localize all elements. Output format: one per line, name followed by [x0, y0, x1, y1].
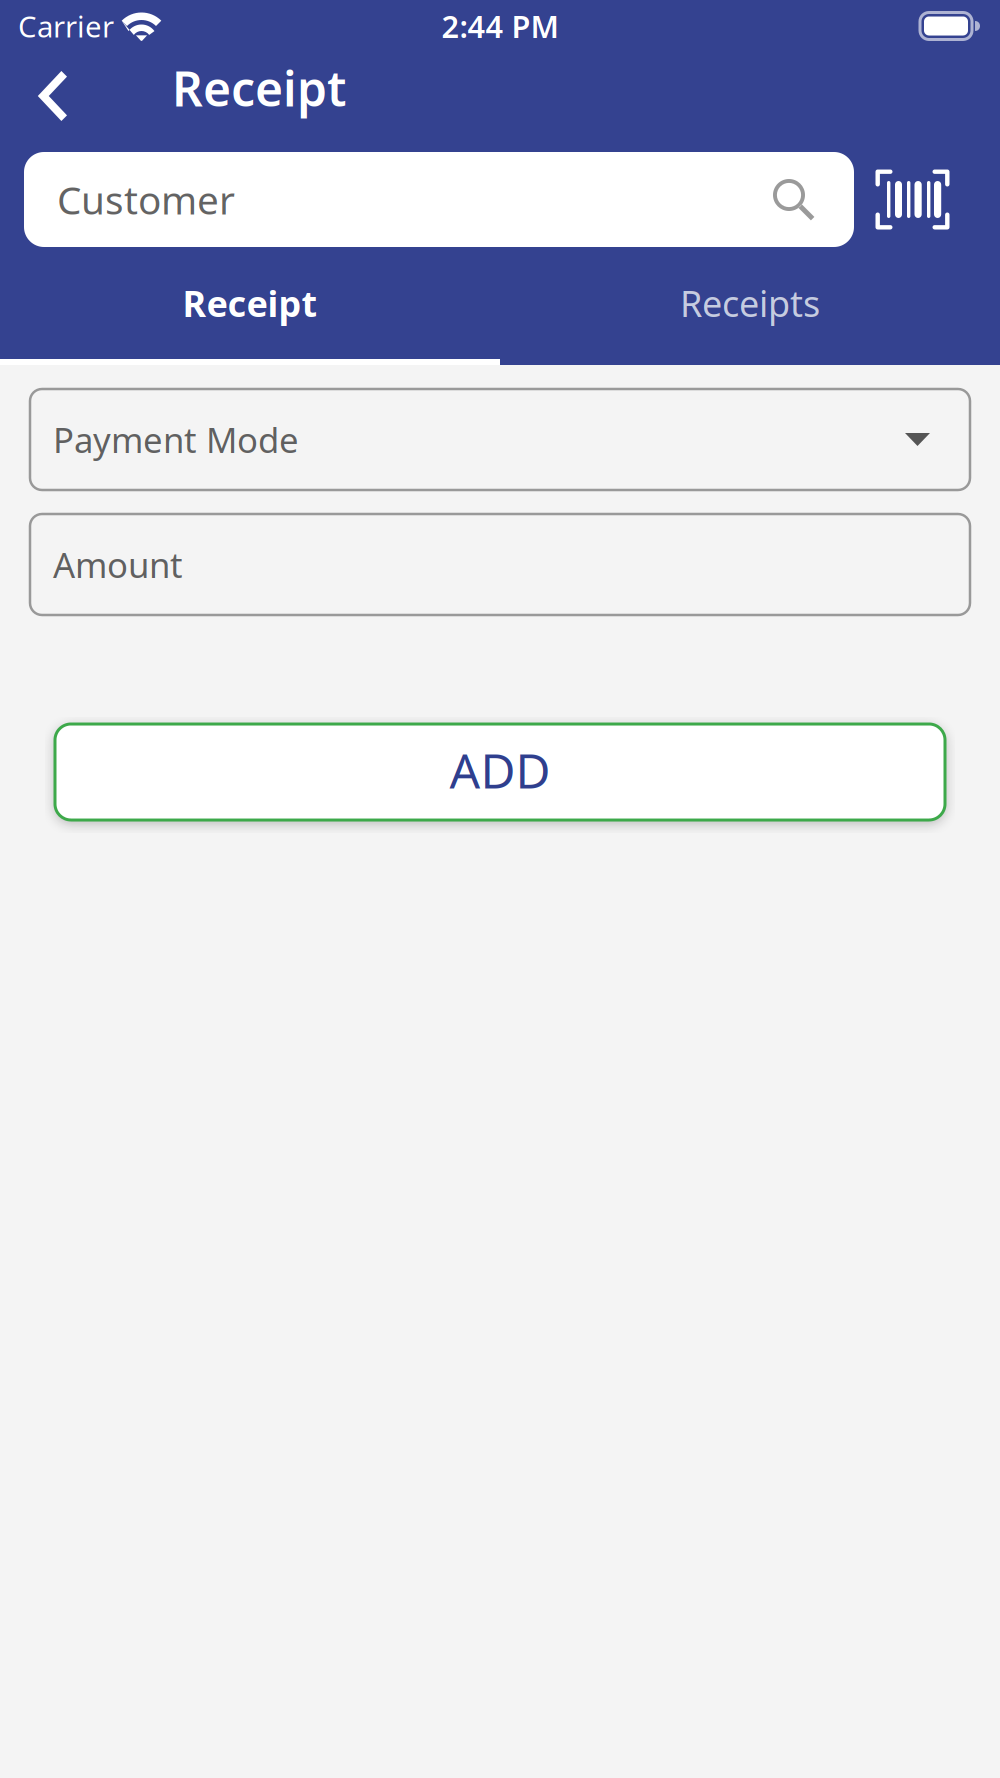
staticText: Receipt	[172, 56, 346, 120]
staticText: Amount	[53, 541, 183, 587]
button[interactable]: Back	[0, 52, 104, 140]
button[interactable]: Receipts	[500, 247, 1000, 365]
staticText: 2:44 PM	[441, 6, 558, 46]
button[interactable]: Customer	[24, 152, 854, 247]
staticText: Receipt	[182, 279, 317, 327]
staticText: Receipts	[680, 279, 820, 327]
staticText: ADD	[449, 738, 550, 802]
button[interactable]: ADD	[30, 724, 970, 820]
staticText: Customer	[57, 174, 235, 225]
button[interactable]: Payment Mode	[30, 389, 970, 490]
staticText: Payment Mode	[53, 416, 299, 462]
button[interactable]: Amount	[30, 514, 970, 615]
staticText: Carrier	[18, 6, 114, 45]
button[interactable]: Scan barcode	[854, 152, 971, 247]
button[interactable]: Receipt	[0, 247, 500, 365]
